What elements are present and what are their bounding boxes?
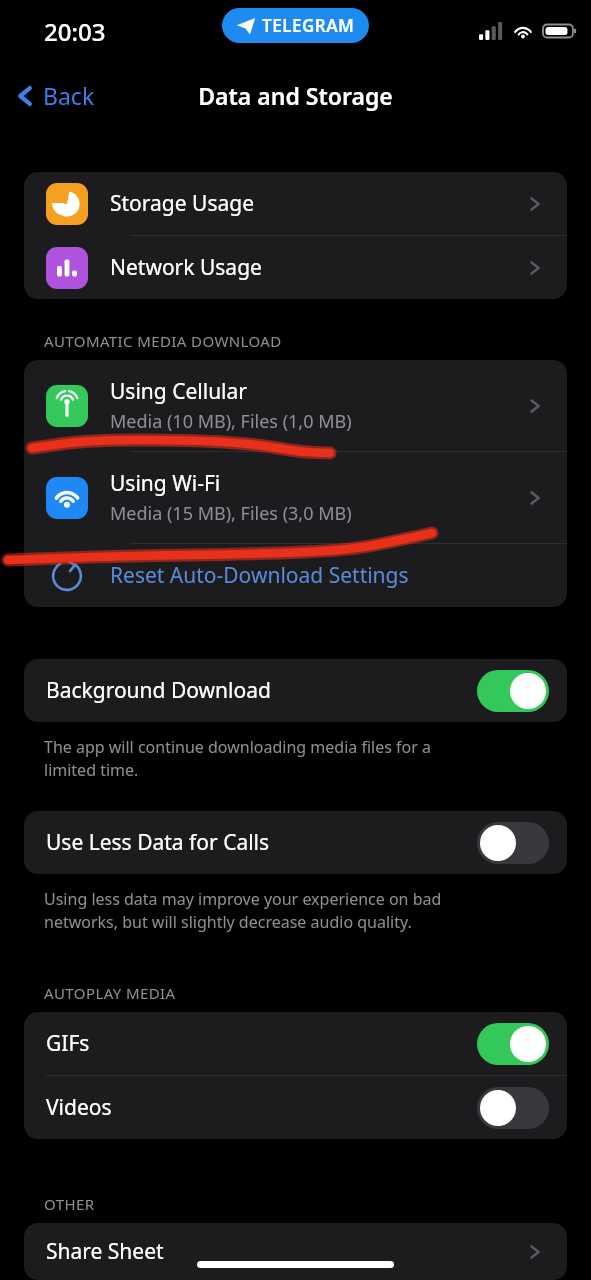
button[interactable]: Using Cellular — [24, 360, 567, 451]
button[interactable]: Background Download — [24, 659, 567, 722]
staticText: GIFs — [46, 1029, 90, 1058]
button[interactable]: Videos — [24, 1076, 567, 1139]
button[interactable]: Use Less Data for Calls — [24, 811, 567, 874]
button[interactable]: Telegram — [236, 14, 355, 37]
button[interactable]: Reset Auto-Download Settings — [24, 544, 567, 607]
staticText: AUTOPLAY MEDIA — [44, 983, 176, 1003]
staticText: Data and Storage — [198, 80, 393, 111]
staticText: OTHER — [44, 1194, 95, 1214]
staticText: The app will continue downloading media … — [44, 736, 431, 781]
staticText: Background Download — [46, 676, 271, 705]
staticText: Videos — [46, 1093, 112, 1122]
staticText: Use Less Data for Calls — [46, 828, 270, 857]
staticText: Share Sheet — [46, 1237, 164, 1266]
button[interactable]: Share Sheet — [24, 1223, 567, 1280]
staticText: Back — [43, 80, 95, 111]
staticText: Media (10 MB), Files (1,0 MB) — [110, 409, 352, 434]
button[interactable]: Off — [477, 1087, 549, 1129]
staticText: Using Wi-Fi — [110, 469, 221, 498]
staticText: Media (15 MB), Files (3,0 MB) — [110, 501, 352, 526]
button[interactable]: GIFs — [24, 1012, 567, 1075]
staticText: Reset Auto-Download Settings — [110, 561, 409, 590]
staticText: Network Usage — [110, 253, 262, 282]
button[interactable]: Off — [477, 822, 549, 864]
staticText: Using Cellular — [110, 377, 247, 406]
staticText: AUTOMATIC MEDIA DOWNLOAD — [44, 331, 282, 351]
staticText: 20:03 — [44, 15, 106, 48]
staticText: TELEGRAM — [262, 14, 355, 37]
button[interactable]: Network Usage — [24, 236, 567, 299]
button[interactable]: Back — [8, 74, 101, 117]
button[interactable]: On — [477, 670, 549, 712]
button[interactable]: On — [477, 1023, 549, 1065]
staticText: Using less data may improve your experie… — [44, 888, 442, 933]
button[interactable]: Using Wi-Fi — [24, 452, 567, 543]
staticText: Storage Usage — [110, 189, 255, 218]
button[interactable]: Storage Usage — [24, 172, 567, 235]
